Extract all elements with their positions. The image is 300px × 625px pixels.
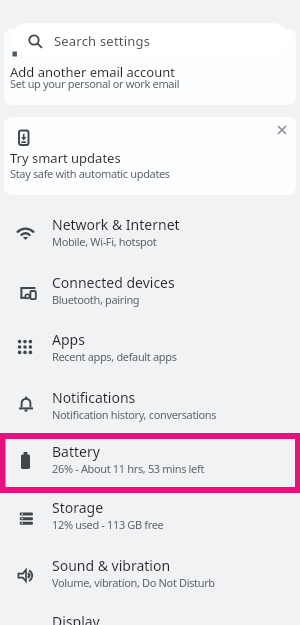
staticText: Search settings	[54, 32, 151, 50]
staticText: 26% - About 11 hrs, 53 mins left	[52, 461, 205, 476]
staticText: Notifications	[52, 388, 136, 407]
button[interactable]: Battery	[0, 431, 300, 487]
staticText: Volume, vibration, Do Not Disturb	[52, 575, 215, 590]
button[interactable]: Storage	[0, 487, 300, 543]
button[interactable]: Connected devices	[0, 262, 300, 318]
staticText: Set up your personal or work email	[10, 76, 180, 91]
staticText: Battery	[52, 442, 100, 461]
button[interactable]: Apps	[0, 319, 300, 375]
staticText: Try smart updates	[10, 149, 121, 167]
button[interactable]	[274, 122, 290, 138]
staticText: Stay safe with automatic updates	[10, 166, 170, 181]
button[interactable]: Network & Internet	[0, 204, 300, 260]
button[interactable]: Notifications	[0, 377, 300, 433]
button[interactable]: Sound & vibration	[0, 545, 300, 601]
button[interactable]	[11, 23, 289, 57]
button[interactable]	[4, 29, 296, 105]
staticText: Mobile, Wi-Fi, hotspot	[52, 234, 157, 249]
button[interactable]	[4, 117, 296, 195]
staticText: Apps	[52, 330, 85, 349]
staticText: Sound & vibration	[52, 556, 171, 575]
staticText: Connected devices	[52, 273, 175, 292]
staticText: Recent apps, default apps	[52, 349, 177, 364]
staticText: Add another email account	[10, 63, 175, 81]
staticText: Storage	[52, 498, 104, 517]
staticText: Bluetooth, pairing	[52, 292, 140, 307]
staticText: Display	[52, 612, 100, 625]
staticText: Notification history, conversations	[52, 407, 217, 422]
button[interactable]: Display	[0, 601, 300, 625]
staticText: Network & Internet	[52, 215, 180, 234]
staticText: 12% used - 113 GB free	[52, 517, 164, 532]
